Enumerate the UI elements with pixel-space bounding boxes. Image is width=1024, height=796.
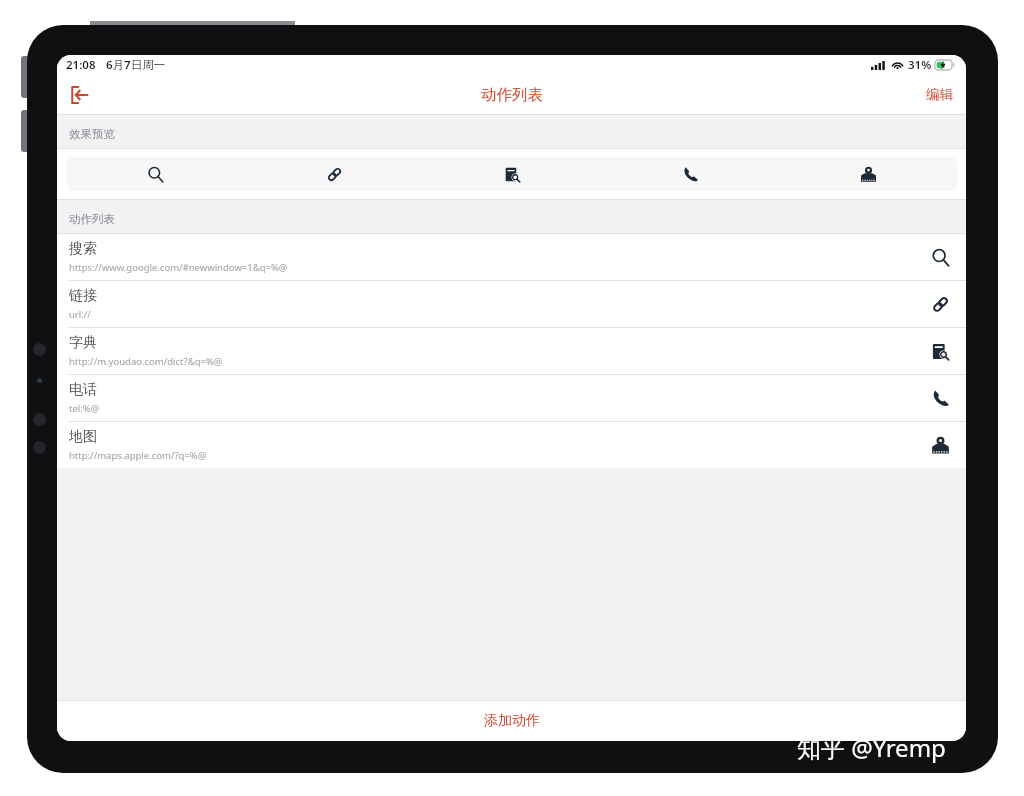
staticText: 31% bbox=[908, 57, 932, 73]
staticText: 添加动作 bbox=[484, 712, 540, 730]
staticText: url:// bbox=[69, 308, 91, 321]
button[interactable]: 编辑 bbox=[913, 77, 966, 112]
button[interactable]: 字典 bbox=[57, 328, 966, 374]
button[interactable]: 搜索 bbox=[66, 157, 245, 191]
button[interactable]: 字典 bbox=[423, 157, 601, 191]
staticText: 动作列表 bbox=[69, 212, 115, 226]
button[interactable]: 链接 bbox=[57, 281, 966, 327]
staticText: http://maps.apple.com/?q=%@ bbox=[69, 449, 207, 462]
button[interactable]: 地图 bbox=[57, 422, 966, 468]
staticText: https://www.google.com/#newwindow=1&q=%@ bbox=[69, 261, 288, 274]
staticText: 效果预览 bbox=[69, 127, 115, 141]
staticText: 地图 bbox=[69, 428, 97, 446]
staticText: 知乎 @Yremp bbox=[797, 731, 946, 764]
button[interactable]: 搜索 bbox=[57, 234, 966, 280]
staticText: 6月7日周一 bbox=[106, 57, 166, 73]
staticText: http://m.youdao.com/dict?&q=%@ bbox=[69, 355, 223, 368]
staticText: 字典 bbox=[69, 334, 97, 352]
staticText: 动作列表 bbox=[481, 85, 543, 105]
button[interactable]: 链接 bbox=[245, 157, 423, 191]
staticText: 编辑 bbox=[926, 86, 953, 103]
button[interactable]: 添加动作 bbox=[57, 701, 966, 741]
staticText: tel:%@ bbox=[69, 402, 100, 415]
button[interactable]: 电话 bbox=[601, 157, 779, 191]
button[interactable]: 地图 bbox=[779, 157, 957, 191]
button[interactable]: 电话 bbox=[57, 375, 966, 421]
staticText: 21:08 bbox=[66, 57, 96, 73]
staticText: 链接 bbox=[69, 287, 97, 305]
button[interactable]: 退出 bbox=[62, 77, 98, 113]
staticText: 搜索 bbox=[69, 240, 97, 258]
staticText: 电话 bbox=[69, 381, 97, 399]
